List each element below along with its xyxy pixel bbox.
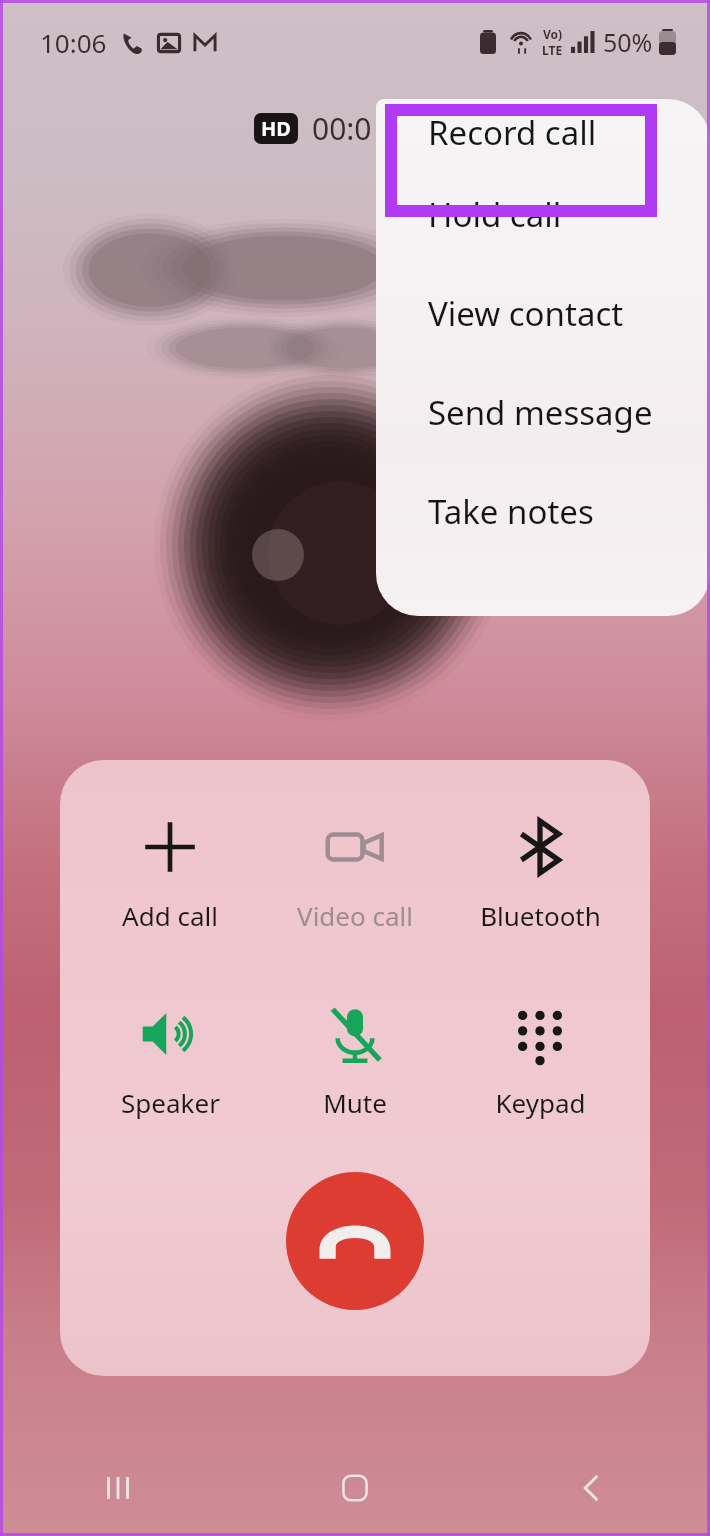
button[interactable]: Take notes	[376, 462, 710, 561]
staticText: Bluetooth	[480, 898, 601, 933]
button[interactable]: Keypad	[465, 999, 615, 1124]
staticText: Take notes	[428, 489, 594, 534]
staticText: 50%	[603, 25, 653, 59]
staticText: 00:0	[312, 108, 372, 149]
staticText: Add call	[122, 898, 218, 933]
button[interactable]: Video call	[280, 812, 430, 937]
staticText: Speaker	[121, 1085, 220, 1120]
staticText: LTE	[542, 42, 563, 58]
button[interactable]: Send message	[376, 363, 710, 462]
button[interactable]: Hold call	[376, 165, 710, 264]
staticText: Send message	[428, 390, 653, 435]
button[interactable]: View contact	[376, 264, 710, 363]
button[interactable]: Record call	[376, 99, 710, 165]
staticText: 10:06	[40, 25, 107, 60]
staticText: Vo)	[543, 26, 563, 42]
staticText: Hold call	[428, 192, 562, 237]
staticText: HD	[261, 115, 291, 142]
button[interactable]: Recents	[0, 1440, 236, 1536]
button[interactable]: End call	[286, 1172, 424, 1310]
staticText: Video call	[297, 898, 413, 933]
button[interactable]: Back	[473, 1440, 710, 1536]
button[interactable]: Bluetooth	[465, 812, 615, 937]
staticText: Record call	[428, 110, 597, 155]
staticText: Mute	[323, 1085, 387, 1120]
button[interactable]: Speaker	[95, 999, 245, 1124]
button[interactable]: Mute	[280, 999, 430, 1124]
button[interactable]: Add call	[95, 812, 245, 937]
button[interactable]: Home	[236, 1440, 473, 1536]
staticText: Keypad	[495, 1085, 586, 1120]
staticText: View contact	[428, 291, 624, 336]
